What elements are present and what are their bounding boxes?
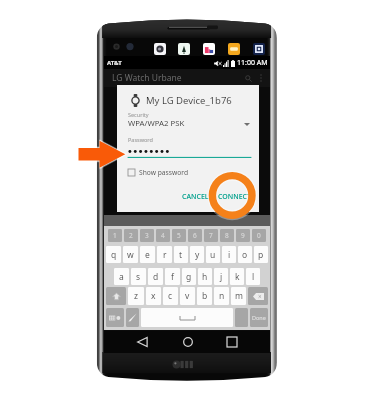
staticText: k: [235, 271, 240, 283]
staticText: v: [185, 290, 190, 302]
button[interactable]: e: [140, 246, 155, 263]
staticText: y: [195, 249, 200, 261]
staticText: 8: [225, 231, 229, 240]
button[interactable]: b: [197, 287, 212, 305]
button[interactable]: Security dropdown: [240, 120, 253, 129]
button[interactable]: Space: [141, 308, 233, 327]
staticText: My LG Device_1b76: [146, 94, 232, 107]
button[interactable]: App 0: [154, 43, 166, 55]
button[interactable]: Backspace: [248, 287, 268, 305]
staticText: b: [202, 290, 208, 302]
staticText: WPA/WPA2 PSK: [128, 118, 185, 129]
button[interactable]: v: [180, 287, 195, 305]
button[interactable]: App 1: [178, 43, 190, 55]
button[interactable]: Shift: [106, 287, 126, 305]
staticText: c: [168, 290, 173, 302]
staticText: z: [134, 290, 138, 302]
staticText: l: [252, 271, 255, 283]
button[interactable]: s: [131, 268, 146, 285]
button[interactable]: 7: [204, 229, 218, 242]
button[interactable]: r: [157, 246, 172, 263]
button[interactable]: i: [222, 246, 236, 263]
button[interactable]: App 2: [203, 43, 215, 55]
button[interactable]: j: [214, 268, 228, 285]
button[interactable]: 3: [140, 229, 154, 242]
staticText: w: [127, 249, 134, 261]
staticText: 9: [241, 231, 245, 240]
button[interactable]: h: [198, 268, 212, 285]
button[interactable]: CONNECT: [214, 189, 255, 205]
staticText: 3: [145, 231, 149, 240]
button[interactable]: f: [165, 268, 180, 285]
button[interactable]: p: [254, 246, 268, 263]
button[interactable]: Search: [241, 71, 255, 85]
staticText: e: [145, 249, 150, 261]
button[interactable]: 1: [108, 229, 122, 242]
staticText: LG Watch Urbane: [112, 72, 182, 84]
button[interactable]: 4: [156, 229, 170, 242]
button[interactable]: App 3: [228, 43, 240, 55]
staticText: 5: [177, 231, 181, 240]
button[interactable]: 2: [124, 229, 138, 242]
button[interactable]: Password field: [127, 145, 252, 159]
staticText: m: [235, 290, 243, 302]
button[interactable]: l: [246, 268, 260, 285]
staticText: t: [179, 249, 183, 261]
button[interactable]: d: [148, 268, 163, 285]
button[interactable]: Symbols: [106, 308, 124, 327]
button[interactable]: Recent apps: [221, 331, 243, 353]
staticText: Done: [252, 314, 266, 321]
button[interactable]: 0: [252, 229, 266, 242]
button[interactable]: x: [146, 287, 161, 305]
button[interactable]: y: [190, 246, 204, 263]
staticText: 1: [113, 231, 117, 240]
staticText: 2: [129, 231, 133, 240]
staticText: d: [153, 271, 159, 283]
button[interactable]: Show password: [128, 167, 189, 177]
button[interactable]: t: [174, 246, 188, 263]
staticText: Password: [128, 136, 153, 143]
button[interactable]: App 4: [253, 43, 265, 55]
staticText: Show password: [139, 168, 189, 177]
button[interactable]: 8: [220, 229, 234, 242]
button[interactable]: CANCEL: [178, 189, 213, 205]
button[interactable]: Done: [250, 308, 268, 327]
staticText: 11:00 AM: [237, 58, 268, 68]
button[interactable]: Home: [177, 331, 199, 353]
staticText: AT&T: [107, 59, 122, 67]
button[interactable]: a: [114, 268, 129, 285]
button[interactable]: m: [231, 287, 246, 305]
staticText: 0: [257, 231, 261, 240]
staticText: i: [228, 249, 231, 261]
button[interactable]: o: [238, 246, 252, 263]
button[interactable]: w: [123, 246, 138, 263]
staticText: n: [219, 290, 225, 302]
staticText: s: [136, 271, 141, 283]
button[interactable]: n: [214, 287, 229, 305]
staticText: 7: [209, 231, 213, 240]
button[interactable]: 9: [236, 229, 250, 242]
staticText: r: [163, 249, 167, 261]
staticText: 4: [161, 231, 165, 240]
staticText: f: [171, 271, 174, 283]
staticText: g: [186, 271, 192, 283]
staticText: o: [242, 249, 248, 261]
button[interactable]: q: [106, 246, 121, 263]
button[interactable]: c: [163, 287, 178, 305]
button[interactable]: 6: [188, 229, 202, 242]
staticText: q: [111, 249, 117, 261]
staticText: h: [202, 271, 208, 283]
button[interactable]: More options: [255, 72, 267, 84]
button[interactable]: k: [230, 268, 244, 285]
button[interactable]: Back: [131, 331, 153, 353]
staticText: 6: [193, 231, 197, 240]
button[interactable]: z: [128, 287, 144, 305]
button[interactable]: 5: [172, 229, 186, 242]
staticText: a: [119, 271, 124, 283]
staticText: CONNECT: [218, 192, 251, 202]
button[interactable]: Handwriting: [126, 308, 139, 327]
button[interactable]: g: [182, 268, 196, 285]
button[interactable]: u: [206, 246, 220, 263]
staticText: Security: [128, 111, 149, 118]
